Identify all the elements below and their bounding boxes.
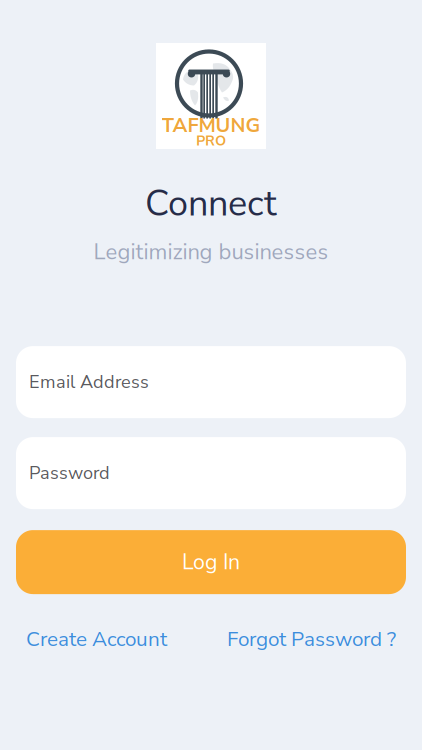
button[interactable]: Forgot Password ? (227, 625, 396, 653)
button[interactable]: Create Account (26, 625, 167, 653)
staticText: Connect (145, 179, 277, 228)
button[interactable]: Password (16, 437, 406, 509)
staticText: PRO (196, 131, 226, 151)
staticText: Log In (182, 548, 240, 577)
staticText: Password (29, 461, 110, 485)
staticText: Email Address (29, 370, 149, 394)
button[interactable]: Email Address (16, 346, 406, 418)
button[interactable]: Log In (16, 530, 406, 594)
staticText: Legitimizing businesses (93, 237, 328, 267)
staticText: Create Account (26, 625, 167, 653)
staticText: Forgot Password ? (227, 625, 396, 653)
staticText: TAFMUNG (161, 112, 260, 139)
